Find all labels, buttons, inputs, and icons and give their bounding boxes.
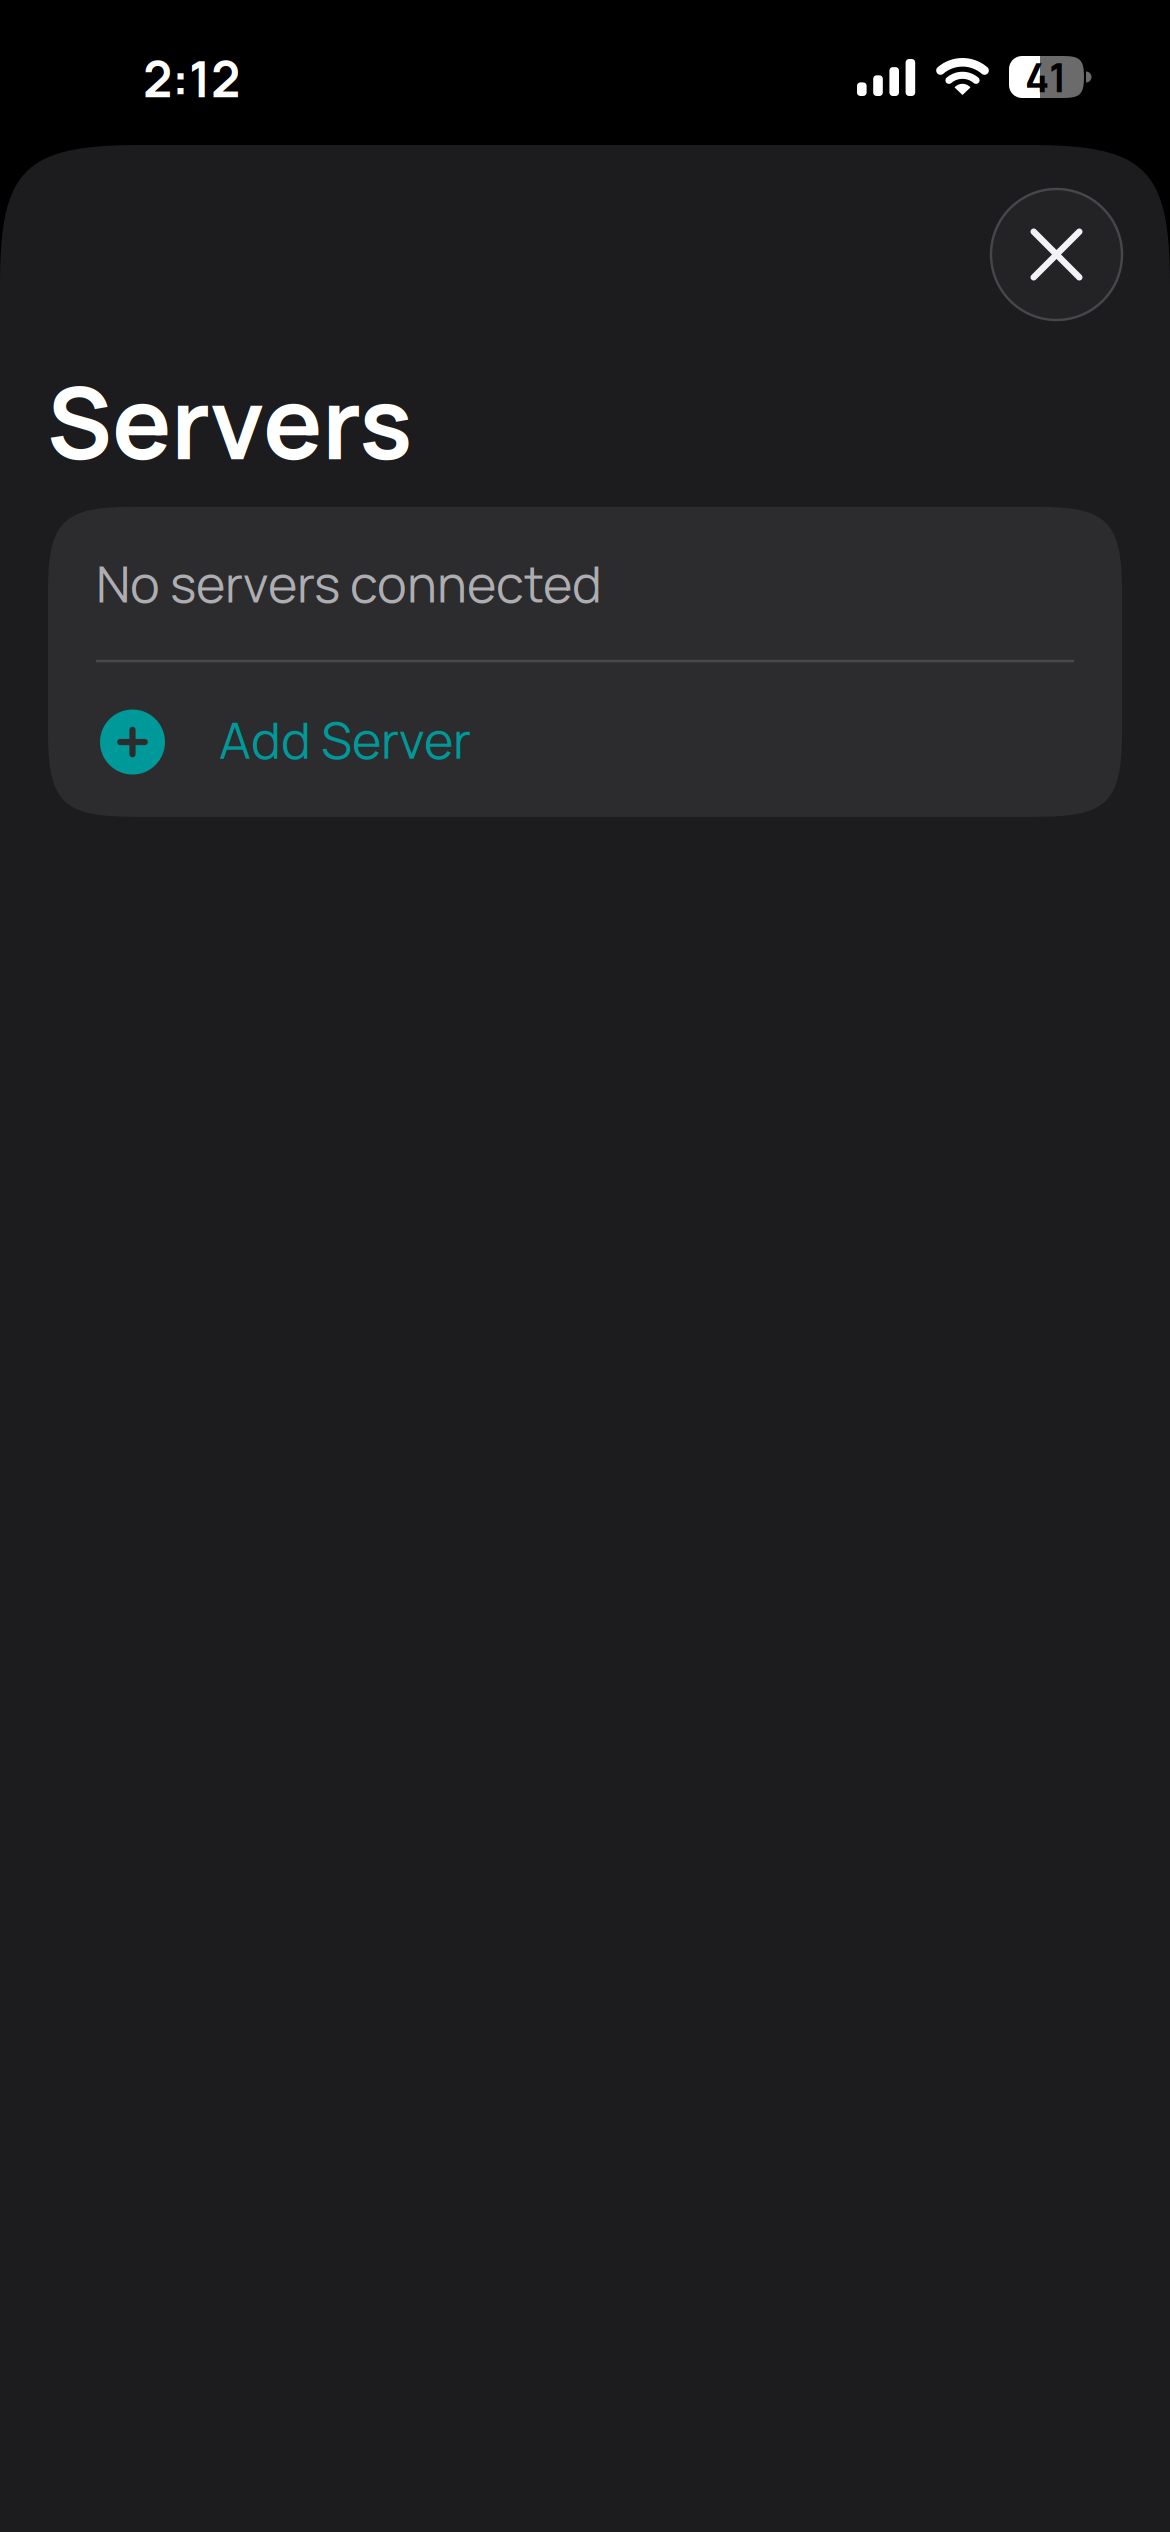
staticText: No servers connected (96, 549, 602, 618)
button[interactable]: Close (991, 189, 1122, 320)
staticText: Servers (47, 354, 412, 489)
staticText: Add Server (219, 705, 471, 774)
staticText: 2:12 (143, 45, 240, 112)
button[interactable]: Add Server (48, 662, 1122, 817)
staticText: 41 (1025, 50, 1067, 104)
